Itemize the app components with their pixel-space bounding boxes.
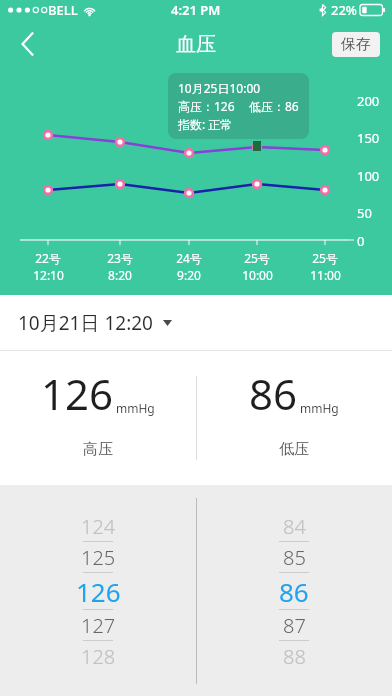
staticText: 11:00 <box>310 267 341 283</box>
staticText: 127 <box>81 612 116 639</box>
staticText: 85 <box>283 544 306 571</box>
staticText: 低压：86 <box>249 98 299 114</box>
staticText: 25号 <box>244 250 270 266</box>
staticText: 200 <box>357 92 380 110</box>
staticText: 88 <box>283 643 306 670</box>
staticText: 10:00 <box>242 267 273 283</box>
staticText: 22% <box>331 1 357 19</box>
staticText: mmHg <box>300 400 339 416</box>
staticText: BELL <box>48 1 78 19</box>
staticText: 126 <box>41 365 114 422</box>
button[interactable]: 126 <box>0 351 196 485</box>
staticText: 10月21日 12:20 <box>18 310 153 336</box>
staticText: 124 <box>81 513 116 540</box>
button[interactable]: 86 <box>196 351 392 485</box>
staticText: 0 <box>357 232 365 250</box>
staticText: 25号 <box>312 250 338 266</box>
staticText: 低压 <box>279 440 309 459</box>
staticText: 4:21 PM <box>171 1 221 19</box>
staticText: 128 <box>81 643 116 670</box>
staticText: 126 <box>76 574 121 609</box>
staticText: 86 <box>249 365 298 422</box>
staticText: 22号 <box>35 250 61 266</box>
staticText: 23号 <box>107 250 133 266</box>
staticText: 高压 <box>83 440 113 459</box>
staticText: 84 <box>283 513 306 540</box>
staticText: 高压：126 <box>178 98 235 114</box>
staticText: 125 <box>81 544 116 571</box>
staticText: mmHg <box>116 400 155 416</box>
staticText: 血压 <box>176 32 216 57</box>
staticText: 8:20 <box>108 267 132 283</box>
staticText: 50 <box>357 204 372 222</box>
staticText: 10月25日10:00 <box>178 80 261 96</box>
staticText: 100 <box>357 167 380 185</box>
staticText: 12:10 <box>33 267 64 283</box>
staticText: 87 <box>283 612 306 639</box>
staticText: 150 <box>357 129 380 147</box>
staticText: 9:20 <box>177 267 201 283</box>
button[interactable]: 124 <box>0 485 196 696</box>
button[interactable]: 10月21日 12:20 <box>0 295 392 350</box>
button[interactable]: 84 <box>196 485 392 696</box>
staticText: 指数: 正常 <box>178 116 233 132</box>
staticText: 86 <box>279 574 309 609</box>
staticText: 24号 <box>176 250 202 266</box>
staticText: 保存 <box>341 35 371 54</box>
button[interactable]: Back <box>6 22 50 66</box>
button[interactable]: 保存 <box>332 32 380 57</box>
